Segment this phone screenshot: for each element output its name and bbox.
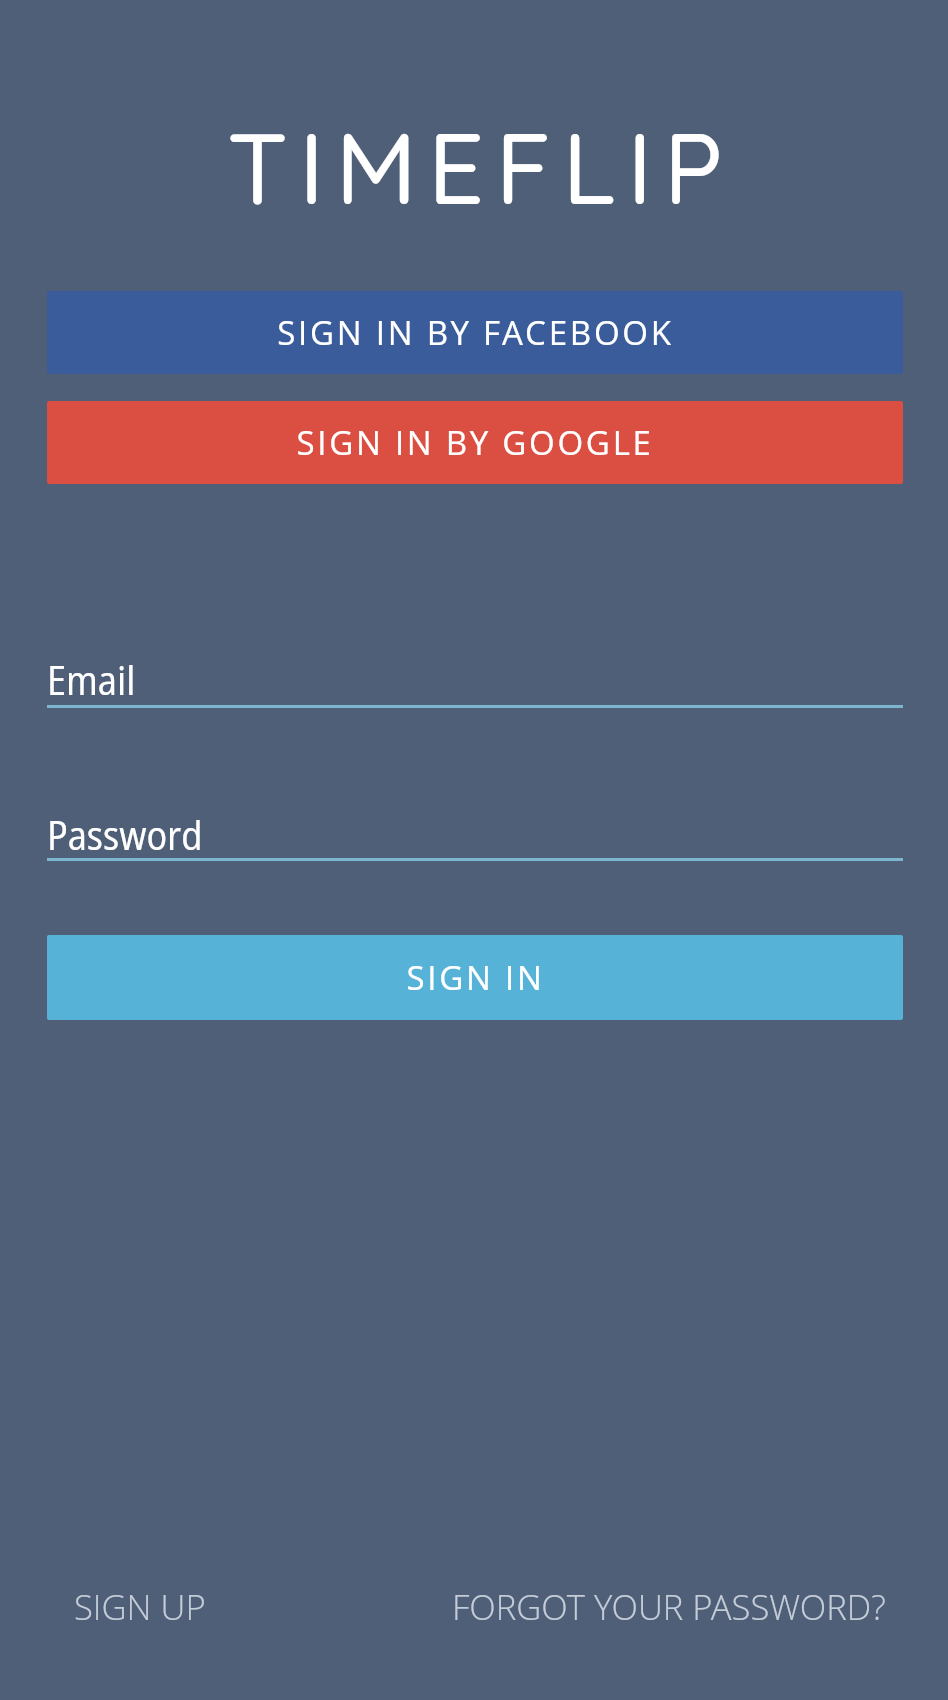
staticText: Password <box>47 807 203 861</box>
button[interactable]: SIGN UP <box>74 1583 206 1630</box>
staticText: TIMEFLIP <box>227 105 734 229</box>
button[interactable]: SIGN IN BY GOOGLE <box>47 401 903 484</box>
button[interactable]: Password <box>47 805 903 861</box>
button[interactable]: SIGN IN BY FACEBOOK <box>47 291 903 374</box>
staticText: SIGN IN <box>406 955 545 1000</box>
staticText: SIGN IN BY FACEBOOK <box>277 310 674 355</box>
staticText: Email <box>47 652 136 706</box>
staticText: SIGN IN BY GOOGLE <box>296 420 654 465</box>
staticText: SIGN UP <box>74 1583 206 1630</box>
button[interactable]: SIGN IN <box>47 935 903 1020</box>
staticText: FORGOT YOUR PASSWORD? <box>452 1583 886 1630</box>
button[interactable]: Email <box>47 652 903 708</box>
button[interactable]: FORGOT YOUR PASSWORD? <box>452 1583 886 1630</box>
